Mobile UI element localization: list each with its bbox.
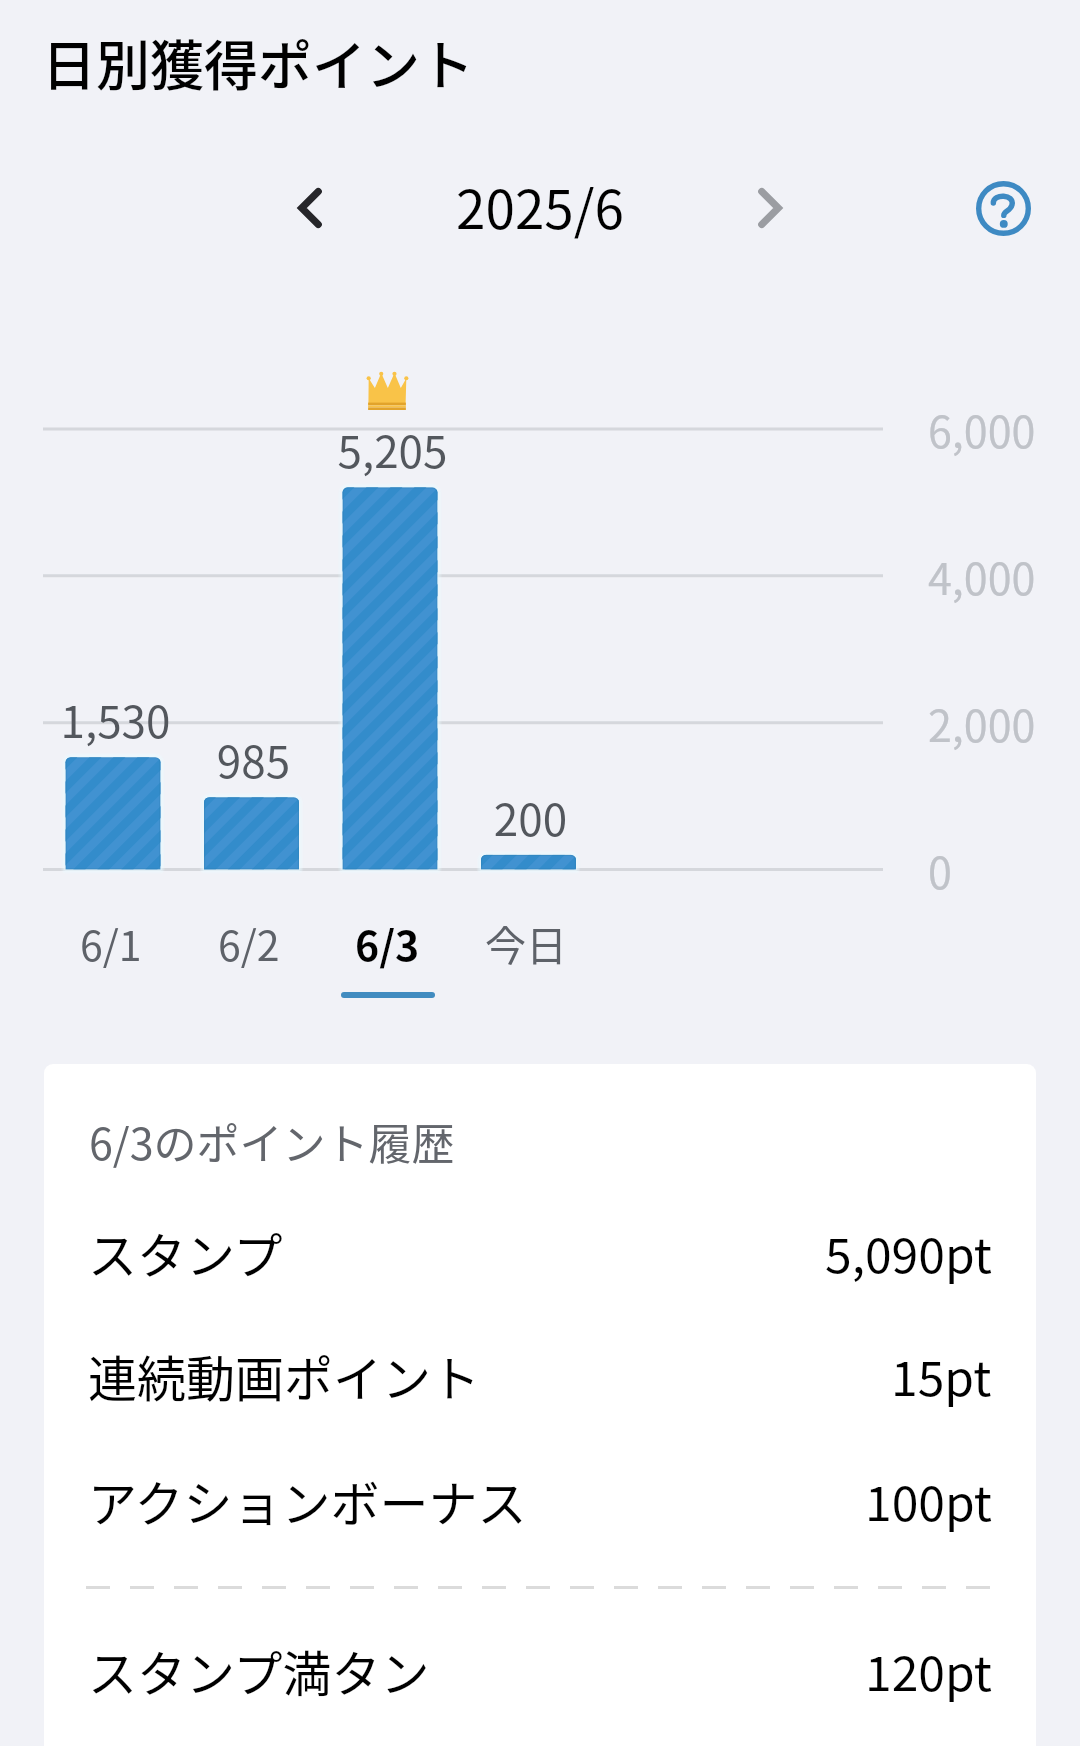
staticText: 985 <box>156 727 351 791</box>
staticText: 200 <box>433 785 628 849</box>
button[interactable]: 6/3 <box>318 913 457 1003</box>
button[interactable]: スタンプ満タン <box>44 1625 1036 1715</box>
staticText: 2,000 <box>928 692 1036 754</box>
button[interactable]: 今日 <box>456 913 595 1003</box>
button[interactable]: 6/1 <box>41 913 180 1003</box>
staticText: スタンプ満タン <box>88 1635 430 1706</box>
staticText: 5,205 <box>295 417 490 481</box>
staticText: 0 <box>928 839 952 901</box>
staticText: 今日 <box>485 913 567 972</box>
button[interactable]: スタンプ <box>44 1207 1036 1297</box>
button[interactable]: 6/2 <box>179 913 318 1003</box>
staticText: アクションボーナス <box>88 1465 527 1536</box>
button[interactable]: アクションボーナス <box>44 1455 1036 1545</box>
staticText: 15pt <box>891 1340 992 1410</box>
staticText: 6/2 <box>218 913 280 972</box>
staticText: 100pt <box>865 1465 992 1535</box>
button[interactable]: 前の月 <box>266 164 354 252</box>
button[interactable]: 次の月 <box>726 164 814 252</box>
staticText: スタンプ <box>88 1217 283 1288</box>
staticText: 120pt <box>865 1635 992 1705</box>
staticText: 4,000 <box>928 545 1036 607</box>
staticText: 6/1 <box>80 913 142 972</box>
staticText: 2025/6 <box>0 168 1080 245</box>
staticText: 連続動画ポイント <box>88 1340 481 1411</box>
staticText: 6,000 <box>928 398 1036 460</box>
staticText: 6/3のポイント履歴 <box>89 1110 455 1172</box>
staticText: 日別獲得ポイント <box>42 23 474 101</box>
staticText: 6/3 <box>355 913 420 972</box>
button[interactable]: ヘルプ <box>960 165 1047 252</box>
staticText: 5,090pt <box>825 1217 992 1287</box>
staticText: 1,530 <box>18 687 213 751</box>
button[interactable]: 連続動画ポイント <box>44 1330 1036 1420</box>
